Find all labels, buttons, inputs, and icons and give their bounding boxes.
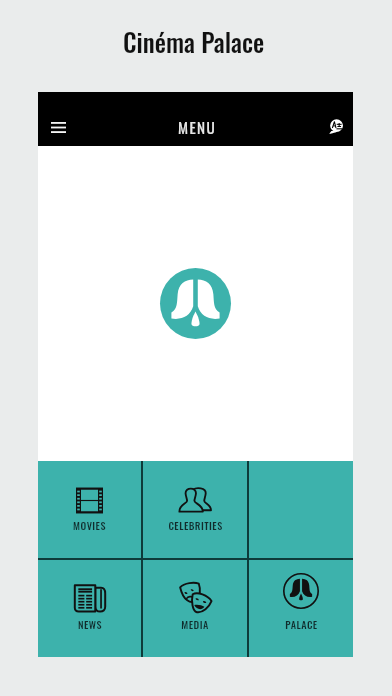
staticText: MENU bbox=[178, 116, 217, 139]
button[interactable]: Menu bbox=[41, 115, 75, 140]
staticText: CELEBRITIES bbox=[168, 518, 223, 533]
button[interactable]: Translate bbox=[322, 114, 350, 139]
staticText: MOVIES bbox=[73, 518, 106, 533]
button[interactable]: MOVIES bbox=[38, 461, 141, 558]
staticText: NEWS bbox=[78, 617, 102, 632]
staticText: Cinéma Palace bbox=[123, 23, 265, 60]
staticText: MEDIA bbox=[181, 617, 209, 632]
button[interactable]: MEDIA bbox=[143, 560, 247, 657]
button[interactable]: CELEBRITIES bbox=[143, 461, 247, 558]
button[interactable]: NEWS bbox=[38, 560, 141, 657]
button[interactable]: PALACE bbox=[249, 560, 353, 657]
staticText: PALACE bbox=[285, 617, 318, 632]
